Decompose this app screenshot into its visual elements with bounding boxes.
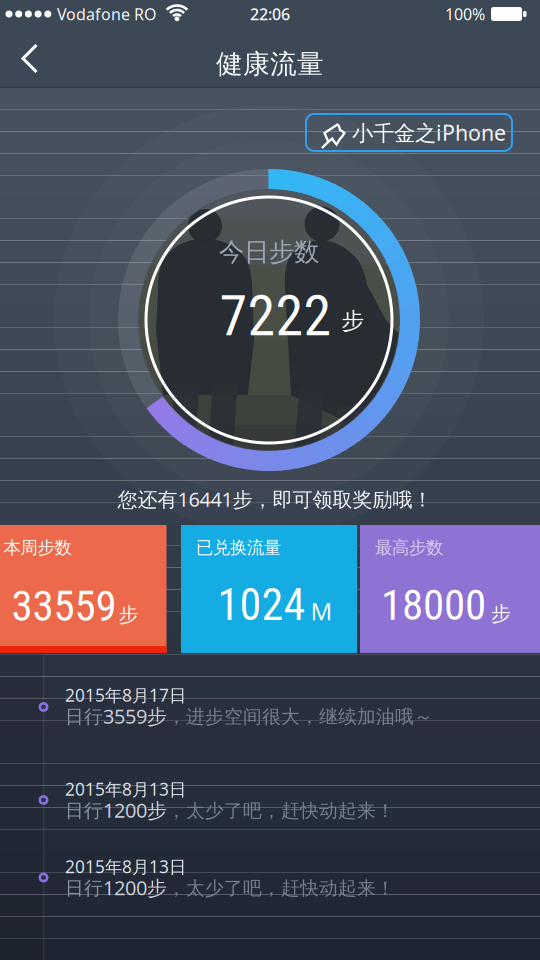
staticText: 22:06 <box>250 3 290 25</box>
staticText: 1200步 <box>103 874 167 901</box>
staticText: 日行 <box>65 705 103 728</box>
staticText: 本周步数 <box>3 537 71 558</box>
staticText: ，进步空间很大，继续加油哦～ <box>167 705 433 728</box>
staticText: 小千金之iPhone <box>352 118 506 147</box>
staticText: 健康流量 <box>216 48 324 80</box>
staticText: 您还有16441步，即可领取奖励哦！ <box>117 486 432 512</box>
staticText: 1200步 <box>103 797 167 823</box>
staticText: 步 <box>341 307 364 335</box>
staticText: 今日步数 <box>219 236 319 267</box>
staticText: ，太少了吧，赶快动起来！ <box>167 877 395 900</box>
staticText: ，太少了吧，赶快动起来！ <box>167 799 395 822</box>
staticText: 2015年8月17日 <box>65 683 186 706</box>
button[interactable]: 最高步数 <box>360 525 540 653</box>
button[interactable]: 已兑换流量 <box>181 525 357 653</box>
staticText: 日行 <box>65 877 103 900</box>
staticText: M <box>310 595 332 627</box>
staticText: 2015年8月13日 <box>65 855 186 878</box>
staticText: 日行 <box>65 799 103 822</box>
staticText: 步 <box>118 603 138 627</box>
staticText: 7222 <box>219 283 331 349</box>
staticText: 步 <box>491 602 511 626</box>
staticText: 已兑换流量 <box>196 537 281 558</box>
button[interactable]: Back <box>0 38 56 79</box>
staticText: 最高步数 <box>375 537 443 558</box>
button[interactable]: 本周步数 <box>0 525 178 653</box>
button[interactable]: 小千金之iPhone <box>306 114 512 151</box>
staticText: 18000 <box>381 580 486 630</box>
staticText: 1024 <box>217 579 305 631</box>
staticText: 2015年8月13日 <box>65 777 186 800</box>
staticText: 3559步 <box>103 703 167 729</box>
staticText: Vodafone RO <box>57 3 156 25</box>
staticText: 33559 <box>11 581 116 631</box>
staticText: 100% <box>445 3 485 25</box>
